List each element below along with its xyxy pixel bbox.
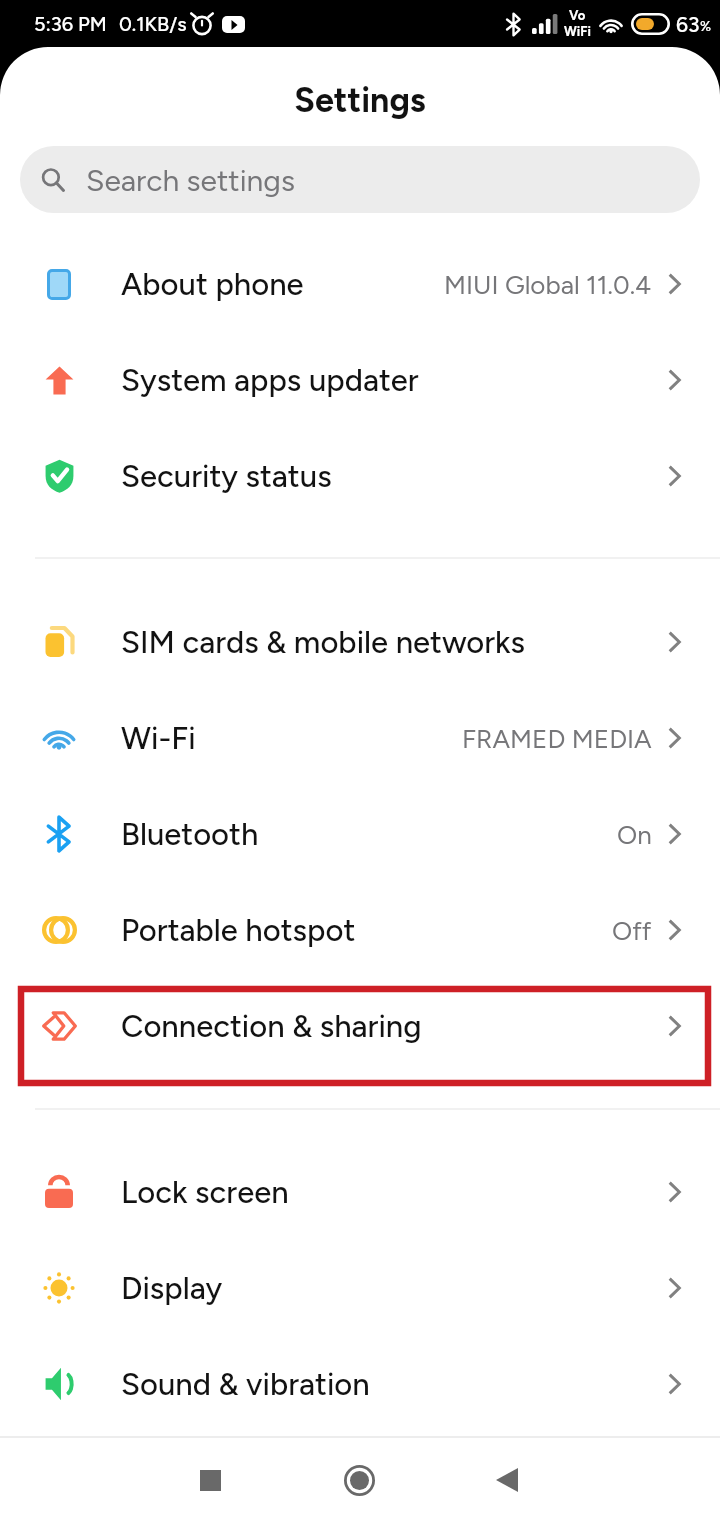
staticText: 63 xyxy=(676,12,700,37)
button[interactable]: Wi-Fi xyxy=(0,690,720,786)
button[interactable]: Back xyxy=(462,1436,552,1520)
staticText: Settings xyxy=(0,80,720,121)
button[interactable]: System apps updater xyxy=(0,332,720,428)
button[interactable]: Sound & vibration xyxy=(0,1336,720,1432)
staticText: Connection & sharing xyxy=(121,1008,422,1045)
button[interactable]: Recents xyxy=(165,1436,255,1520)
staticText: Lock screen xyxy=(121,1174,289,1211)
button[interactable]: Connection & sharing xyxy=(0,978,720,1074)
staticText: FRAMED MEDIA xyxy=(462,723,652,754)
staticText: Vo xyxy=(569,8,586,24)
staticText: Search settings xyxy=(86,162,295,198)
button[interactable]: Security status xyxy=(0,428,720,524)
staticText: SIM cards & mobile networks xyxy=(121,624,526,661)
staticText: % xyxy=(700,18,712,35)
staticText: Portable hotspot xyxy=(121,912,356,949)
staticText: Off xyxy=(612,915,652,946)
staticText: System apps updater xyxy=(121,362,419,399)
staticText: Security status xyxy=(121,458,332,495)
staticText: 0.1KB/s xyxy=(119,12,187,36)
staticText: About phone xyxy=(121,266,304,303)
button[interactable]: Lock screen xyxy=(0,1144,720,1240)
staticText: WiFi xyxy=(564,24,591,40)
staticText: Display xyxy=(121,1270,223,1307)
button[interactable]: About phone xyxy=(0,236,720,332)
button[interactable]: Home xyxy=(314,1436,404,1520)
button[interactable]: Bluetooth xyxy=(0,786,720,882)
button[interactable]: Portable hotspot xyxy=(0,882,720,978)
staticText: On xyxy=(617,819,652,850)
staticText: MIUI Global 11.0.4 xyxy=(444,269,652,300)
button[interactable]: Display xyxy=(0,1240,720,1336)
staticText: 5:36 PM xyxy=(34,12,107,36)
button[interactable]: SIM cards & mobile networks xyxy=(0,594,720,690)
button[interactable]: Search settings xyxy=(20,146,700,213)
staticText: Sound & vibration xyxy=(121,1366,370,1403)
staticText: Bluetooth xyxy=(121,816,259,853)
staticText: Wi-Fi xyxy=(121,720,196,757)
